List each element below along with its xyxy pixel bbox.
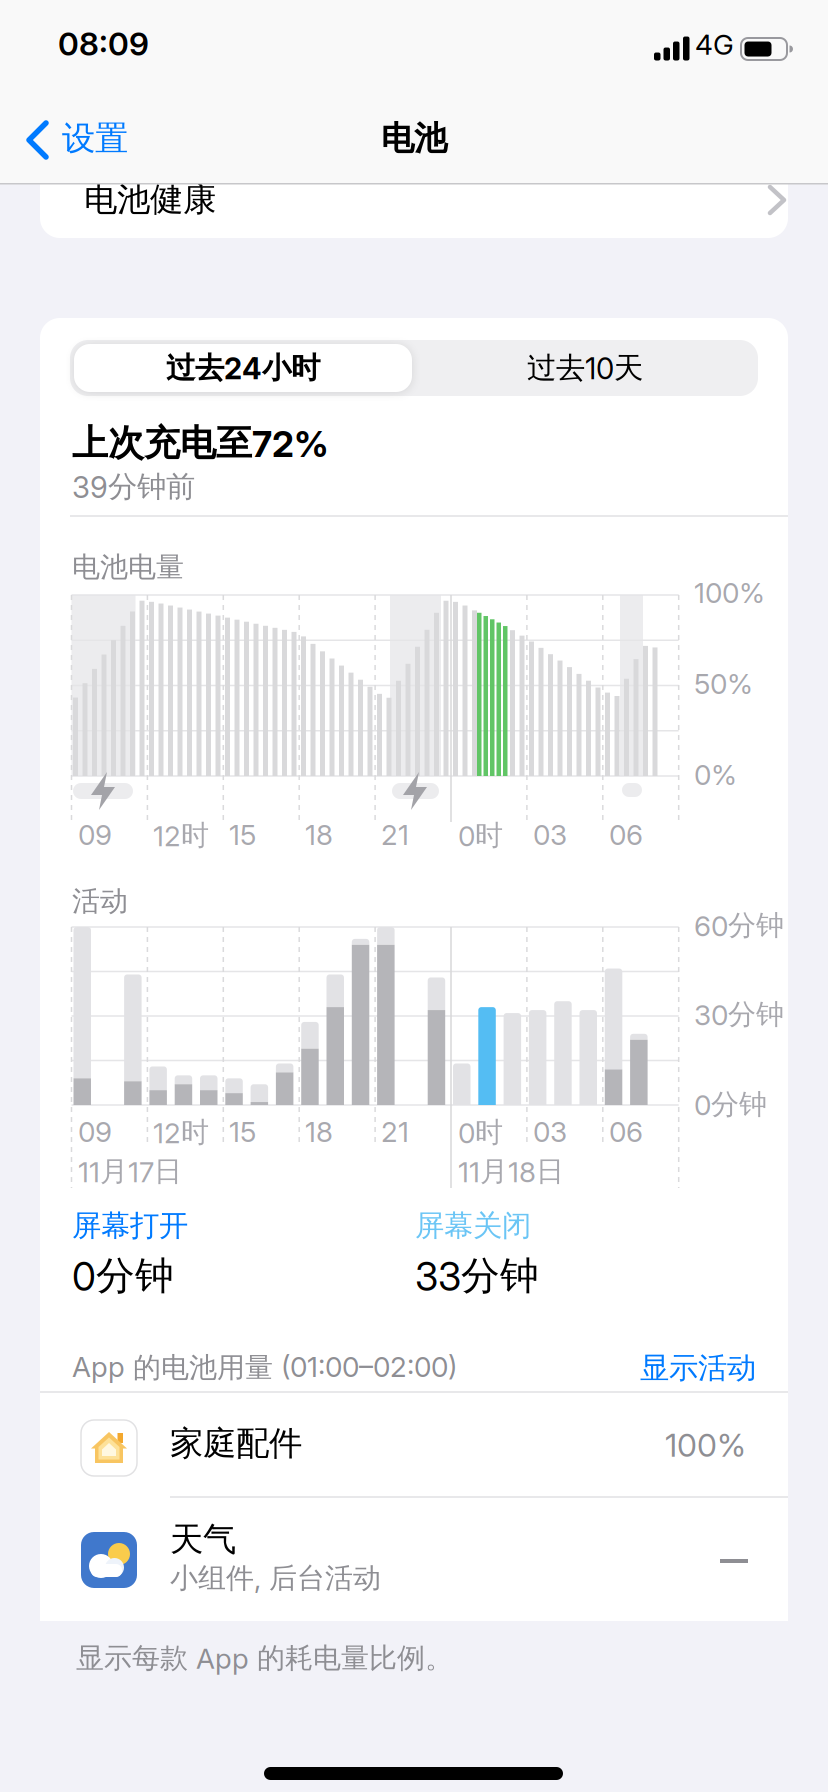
staticText: 电池	[381, 118, 447, 159]
staticText: 12时	[153, 818, 209, 853]
button[interactable]: 显示活动	[40, 1346, 756, 1390]
staticText: 12时	[153, 1115, 209, 1150]
staticText: 显示活动	[640, 1350, 756, 1386]
staticText: 03	[533, 1115, 567, 1148]
staticText: App 的电池用量 (01:00–02:00)	[72, 1350, 457, 1385]
staticText: 03	[533, 818, 567, 851]
staticText: 33分钟	[415, 1252, 539, 1300]
staticText: 06	[609, 1115, 643, 1148]
staticText: 21	[381, 818, 409, 851]
staticText: 屏幕关闭	[415, 1208, 531, 1244]
staticText: 活动	[72, 884, 128, 918]
button[interactable]: 设置	[0, 110, 140, 170]
staticText: 设置	[62, 118, 128, 159]
staticText: 显示每款 App 的耗电量比例。	[76, 1641, 453, 1675]
staticText: 15	[229, 1115, 256, 1148]
staticText: 11月18日	[458, 1154, 564, 1189]
staticText: 小组件, 后台活动	[170, 1561, 381, 1595]
staticText: 天气	[170, 1519, 236, 1560]
staticText: 0时	[458, 1115, 503, 1150]
button[interactable]: 过去24小时	[74, 344, 412, 392]
staticText: 过去24小时	[166, 350, 320, 386]
button[interactable]: 电池健康	[40, 140, 828, 1792]
staticText: 18	[305, 818, 333, 851]
staticText: 电池电量	[72, 550, 184, 584]
button[interactable]: 家庭配件	[40, 1393, 788, 1497]
staticText: 100%	[694, 576, 765, 609]
staticText: 11月17日	[78, 1154, 182, 1189]
staticText: 30分钟	[694, 997, 784, 1032]
staticText: 家庭配件	[170, 1423, 302, 1464]
staticText: 08:09	[58, 25, 149, 63]
staticText: 09	[78, 1115, 112, 1148]
staticText: 60分钟	[694, 908, 784, 943]
staticText: 21	[381, 1115, 409, 1148]
staticText: 电池健康	[84, 179, 216, 220]
staticText: 0时	[458, 818, 503, 853]
staticText: 100%	[665, 1426, 746, 1464]
staticText: 0%	[694, 758, 737, 791]
button[interactable]: 过去10天	[416, 344, 754, 392]
staticText: 屏幕打开	[72, 1208, 188, 1244]
button[interactable]: 天气	[40, 1499, 788, 1621]
staticText: 06	[609, 818, 643, 851]
staticText: 过去10天	[527, 350, 643, 386]
staticText: 0分钟	[72, 1252, 174, 1300]
staticText: 15	[229, 818, 256, 851]
staticText: 50%	[694, 667, 753, 700]
staticText: 0分钟	[694, 1087, 767, 1122]
staticText: 4G	[695, 28, 734, 61]
staticText: 39分钟前	[72, 469, 195, 505]
staticText: 18	[305, 1115, 333, 1148]
staticText: 09	[78, 818, 112, 851]
staticText: 上次充电至72%	[72, 421, 329, 465]
